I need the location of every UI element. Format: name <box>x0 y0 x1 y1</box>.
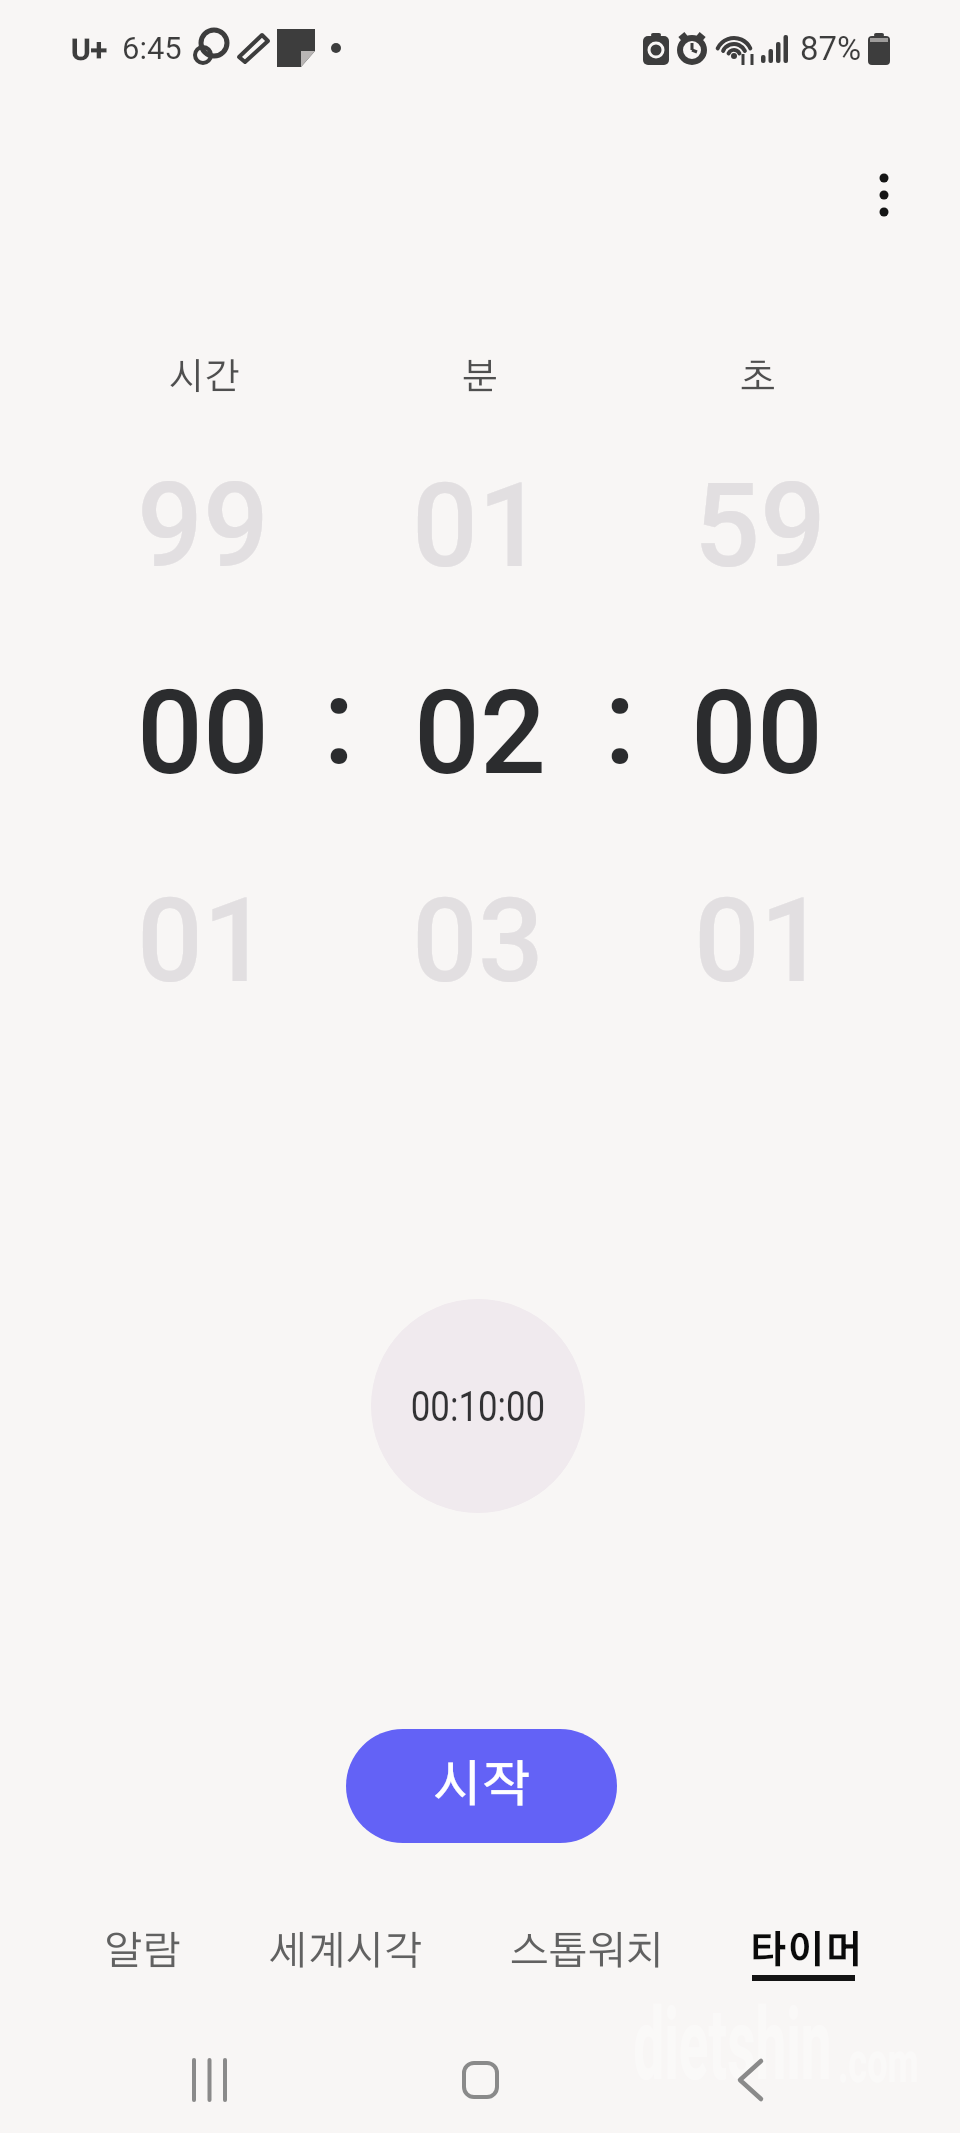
staticText: 분 <box>462 359 498 396</box>
staticText: 00 <box>137 665 269 801</box>
staticText: : <box>323 652 355 793</box>
button[interactable]: 세계시각 <box>266 1913 426 1991</box>
staticText: 59 <box>694 458 826 594</box>
staticText: 02 <box>414 665 546 801</box>
staticText: : <box>604 652 636 793</box>
staticText: 00 <box>691 665 823 801</box>
staticText: 초 <box>740 359 776 396</box>
button[interactable] <box>700 2030 800 2130</box>
staticText: dietshin <box>633 1986 832 2103</box>
button[interactable]: 스톱워치 <box>507 1913 667 1991</box>
staticText: 시간 <box>169 359 241 396</box>
button[interactable]: 알람 <box>82 1913 202 1991</box>
staticText: 03 <box>412 873 544 1009</box>
staticText: 01 <box>694 873 826 1009</box>
staticText: 스톱워치 <box>510 1932 664 1972</box>
staticText: 00:10:00 <box>411 1382 545 1431</box>
staticText: 알람 <box>104 1932 181 1972</box>
button[interactable]: 00:10:00 <box>371 1299 585 1513</box>
button[interactable]: 타이머 <box>746 1913 866 1991</box>
staticText: 세계시각 <box>269 1932 423 1972</box>
staticText: 타이머 <box>749 1933 863 1971</box>
button[interactable]: 시작 <box>346 1729 617 1843</box>
staticText: 6:45 <box>122 30 182 66</box>
button[interactable] <box>160 2030 260 2130</box>
staticText: 87% <box>800 29 862 68</box>
button[interactable] <box>430 2030 530 2130</box>
staticText: 99 <box>137 458 269 594</box>
button[interactable] <box>854 160 914 230</box>
staticText: 01 <box>412 458 544 594</box>
staticText: 01 <box>137 873 269 1009</box>
staticText: 시작 <box>433 1761 531 1811</box>
staticText: U+ <box>71 32 108 67</box>
